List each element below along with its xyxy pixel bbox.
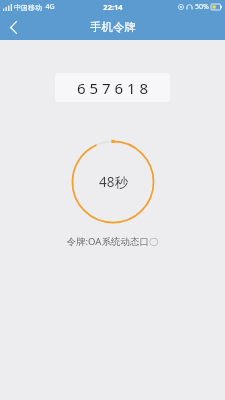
staticText: 22:14: [103, 2, 123, 12]
button[interactable]: 6 5 7 6 1 8: [55, 73, 170, 102]
staticText: 50%: [195, 2, 209, 12]
button[interactable]: Back: [0, 14, 26, 40]
staticText: 中国移动: [14, 3, 42, 12]
staticText: 手机令牌: [90, 20, 136, 34]
staticText: 令牌:OA系统动态口〇: [0, 235, 225, 248]
staticText: 6 5 7 6 1 8: [77, 78, 148, 98]
staticText: 48秒: [99, 173, 128, 191]
staticText: 4G: [45, 2, 55, 12]
